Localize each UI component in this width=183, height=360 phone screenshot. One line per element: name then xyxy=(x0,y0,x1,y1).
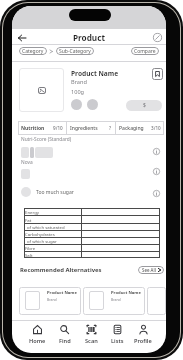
button[interactable]: Product Name xyxy=(83,287,145,315)
button[interactable]: Back xyxy=(15,31,28,44)
staticText: Fibre xyxy=(25,245,36,251)
staticText: of which saturated xyxy=(27,224,65,230)
staticText: Brand xyxy=(47,297,57,302)
button[interactable]: Info xyxy=(151,188,161,198)
staticText: 100g xyxy=(71,88,85,96)
button[interactable]: Sub-Category xyxy=(56,47,94,55)
staticText: ? xyxy=(109,125,112,131)
staticText: Salt xyxy=(25,252,33,258)
staticText: Nutri-Score (Standard) xyxy=(21,136,72,143)
button[interactable]: Packaging xyxy=(116,121,164,135)
button[interactable]: Edit xyxy=(151,31,163,43)
staticText: Nutrition xyxy=(21,125,45,132)
button[interactable]: Info xyxy=(151,146,161,156)
button[interactable]: Bookmark xyxy=(152,68,163,80)
staticText: Category xyxy=(22,48,44,55)
staticText: Sub-Category xyxy=(59,48,91,55)
staticText: Brand xyxy=(71,78,87,86)
button[interactable] xyxy=(147,287,166,315)
staticText: Brand xyxy=(111,297,121,302)
button[interactable]: Find xyxy=(51,321,78,347)
button[interactable]: Category xyxy=(19,47,47,55)
staticText: of which sugar xyxy=(27,238,57,244)
staticText: Carbohydrates xyxy=(25,231,55,237)
staticText: Ingredients xyxy=(70,125,98,132)
button[interactable]: Home xyxy=(24,321,51,347)
staticText: Compare xyxy=(134,48,156,55)
staticText: Scan xyxy=(85,337,98,345)
button[interactable]: Profile xyxy=(130,321,156,347)
button[interactable]: Ingredients xyxy=(67,121,115,135)
staticText: Too much sugar xyxy=(36,189,74,196)
button[interactable]: $ xyxy=(126,100,162,111)
staticText: Product xyxy=(73,32,105,43)
staticText: Product Name xyxy=(111,290,141,296)
staticText: Product Name xyxy=(71,69,119,78)
button[interactable]: Product Name xyxy=(19,287,81,315)
staticText: Packaging xyxy=(119,125,144,132)
staticText: Fat xyxy=(25,217,32,223)
staticText: 9/10 xyxy=(53,125,63,131)
button[interactable]: Nutrition xyxy=(18,121,66,135)
staticText: Home xyxy=(29,337,46,345)
button[interactable]: Compare xyxy=(131,47,159,55)
button[interactable]: Lists xyxy=(104,321,130,347)
staticText: Profile xyxy=(134,337,152,345)
staticText: Lists xyxy=(111,337,124,345)
staticText: Recommended Alternatives xyxy=(20,266,102,274)
staticText: Find xyxy=(59,337,71,345)
button[interactable]: Scan xyxy=(78,321,104,347)
staticText: Product Name xyxy=(47,290,77,296)
button[interactable]: Info xyxy=(151,166,161,176)
staticText: 3/10 xyxy=(151,125,161,131)
staticText: Nova xyxy=(21,159,33,166)
staticText: Energy xyxy=(25,209,40,215)
staticText: $ xyxy=(143,102,146,109)
staticText: See All xyxy=(142,267,156,273)
button[interactable]: See All xyxy=(138,266,164,274)
